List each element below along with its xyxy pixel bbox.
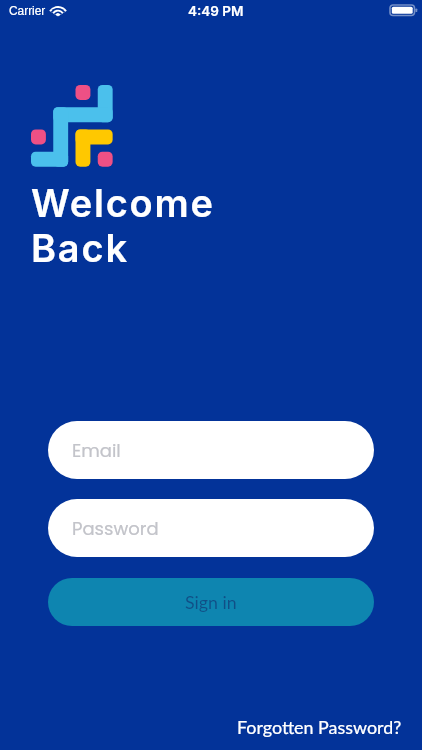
button[interactable]: Password <box>48 499 374 557</box>
staticText: Password <box>72 516 159 541</box>
staticText: Carrier <box>9 4 46 17</box>
staticText: 4:49 PM <box>188 3 244 19</box>
button[interactable]: Email <box>48 421 374 479</box>
staticText: Forgotten Password? <box>237 716 402 737</box>
button[interactable]: Forgotten Password? <box>229 712 410 741</box>
staticText: Email <box>72 438 121 463</box>
button[interactable]: Sign in <box>48 578 374 626</box>
staticText: Sign in <box>185 591 237 612</box>
staticText: Welcome <box>31 180 215 226</box>
staticText: Back <box>31 225 129 271</box>
other: Wi-Fi <box>50 5 68 18</box>
other: Battery full <box>390 5 418 17</box>
